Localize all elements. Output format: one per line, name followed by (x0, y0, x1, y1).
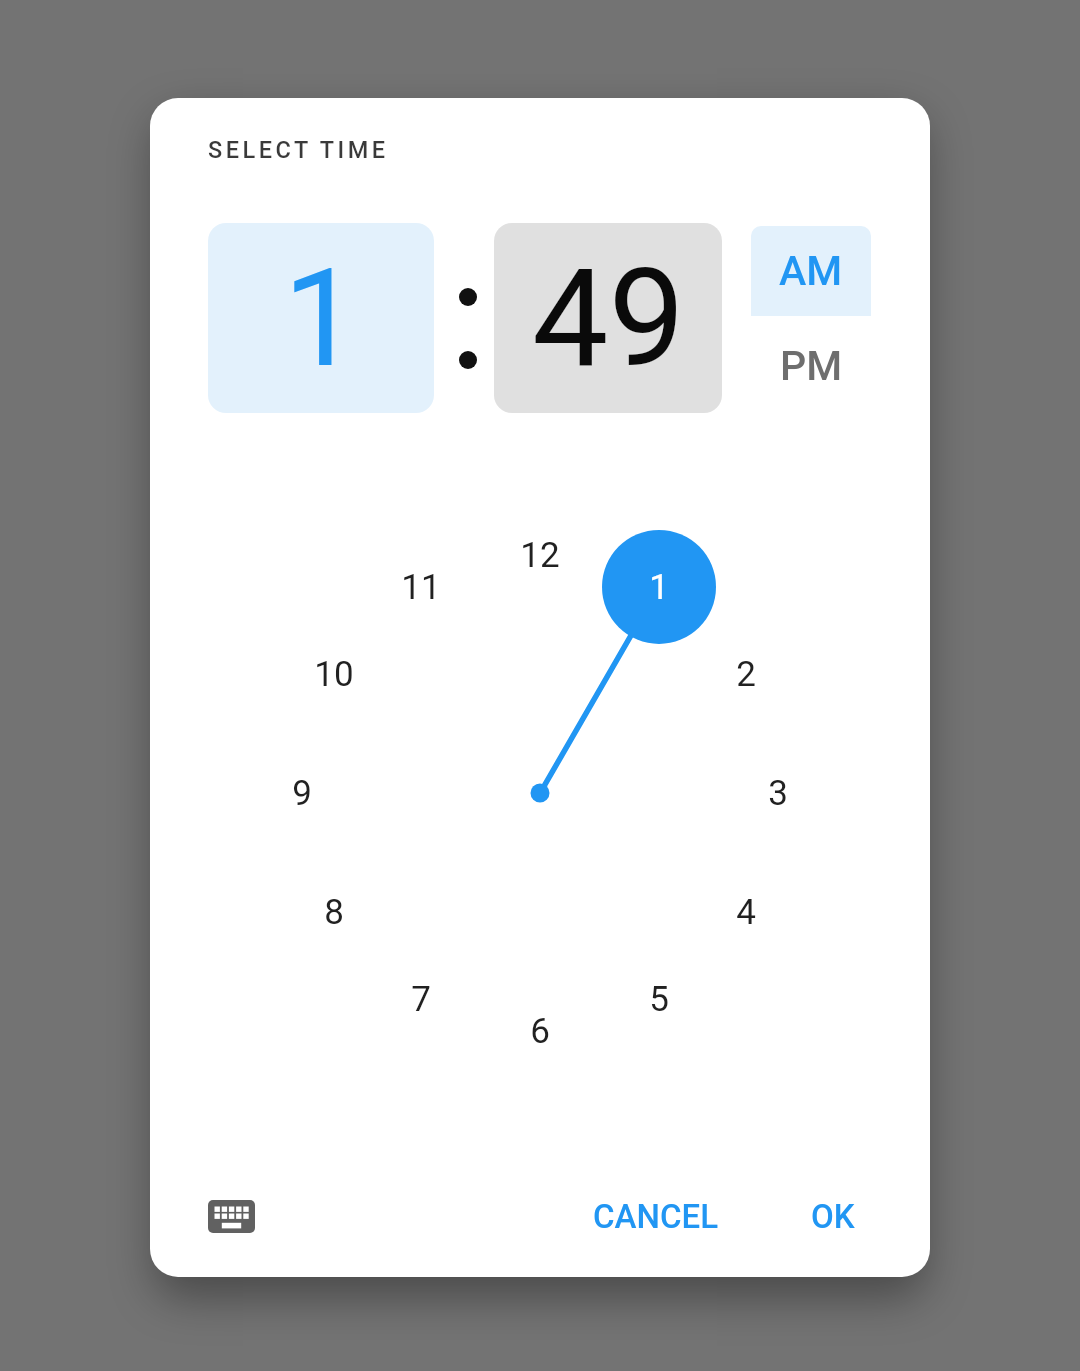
button[interactable] (208, 1200, 255, 1233)
button[interactable]: CANCEL (570, 1181, 742, 1251)
button[interactable]: 9 (262, 753, 342, 833)
button[interactable]: 8 (294, 872, 374, 952)
staticText: 1 (283, 239, 360, 398)
staticText: CANCEL (593, 1197, 719, 1236)
staticText: 4 (736, 892, 756, 933)
button[interactable]: 12 (500, 515, 580, 595)
button[interactable]: 7 (381, 959, 461, 1039)
button[interactable]: 3 (738, 753, 818, 833)
staticText: 2 (736, 654, 756, 695)
button[interactable]: 4 (706, 872, 786, 952)
button[interactable]: AM (751, 226, 871, 316)
staticText: 8 (324, 892, 344, 933)
staticText: 7 (411, 979, 431, 1020)
staticText: OK (811, 1197, 855, 1236)
button[interactable]: 1 (208, 223, 434, 413)
staticText: 11 (401, 567, 441, 608)
staticText: 6 (530, 1011, 550, 1052)
staticText: SELECT TIME (208, 136, 389, 164)
button[interactable]: 6 (500, 991, 580, 1071)
button[interactable]: 11 (381, 547, 461, 627)
button[interactable]: 10 (294, 634, 374, 714)
button[interactable]: 49 (494, 223, 722, 413)
staticText: PM (780, 342, 843, 390)
staticText: 10 (314, 654, 354, 695)
staticText: 5 (649, 979, 669, 1020)
staticText: 49 (532, 239, 685, 398)
staticText: 9 (292, 773, 312, 814)
button[interactable]: 1 (619, 547, 699, 627)
staticText: 3 (768, 773, 788, 814)
button[interactable]: 5 (619, 959, 699, 1039)
staticText: 12 (520, 535, 560, 576)
staticText: AM (779, 247, 843, 295)
button[interactable]: PM (751, 316, 871, 416)
staticText: 1 (649, 567, 669, 608)
button[interactable]: 2 (706, 634, 786, 714)
button[interactable]: OK (780, 1181, 886, 1251)
